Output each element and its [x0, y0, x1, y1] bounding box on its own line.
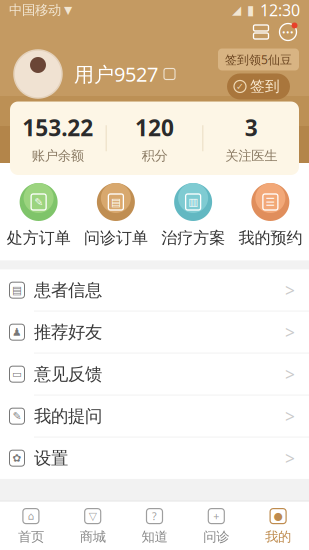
staticText: 我的提问 [34, 405, 102, 427]
button[interactable]: ▤ [0, 270, 309, 312]
staticText: ♟ [12, 326, 22, 338]
button[interactable]: ✎ [0, 183, 77, 248]
staticText: 问诊订单 [84, 228, 148, 248]
staticText: ▭ [12, 368, 22, 380]
staticText: 治疗方案 [161, 228, 225, 248]
button[interactable]: ▭ [0, 354, 309, 396]
staticText: 首页 [18, 529, 44, 545]
staticText: 12:30 [260, 0, 300, 21]
staticText: ▽ [89, 510, 97, 522]
button[interactable]: 编辑昵称 [158, 62, 179, 85]
staticText: 患者信息 [34, 279, 102, 301]
staticText: > [285, 321, 295, 344]
staticText: > [285, 279, 295, 302]
staticText: 推荐好友 [34, 321, 102, 343]
staticText: ✓ [236, 81, 244, 92]
staticText: 我的 [265, 529, 291, 545]
button[interactable]: ▤ [77, 183, 154, 248]
staticText: 设置 [34, 447, 68, 469]
staticText: 知道 [141, 529, 167, 545]
staticText: 用户9527 [74, 61, 158, 87]
staticText: + [213, 509, 219, 523]
staticText: ✎ [34, 196, 43, 208]
staticText: 120 [135, 112, 174, 143]
staticText: 意见反馈 [34, 363, 102, 385]
button[interactable]: ✿ [0, 438, 309, 479]
button[interactable]: ✎ [0, 396, 309, 438]
staticText: > [285, 447, 295, 470]
staticText: 中国移动 [9, 2, 61, 18]
button[interactable]: ▽ [62, 502, 124, 550]
staticText: 签到 [250, 77, 280, 95]
button[interactable]: ● [247, 502, 309, 550]
staticText: 处方订单 [7, 228, 71, 248]
staticText: ✎ [12, 410, 21, 422]
staticText: 关注医生 [225, 148, 277, 164]
staticText: ▤ [111, 196, 121, 208]
button[interactable]: ⌂ [0, 502, 62, 550]
staticText: ▼ [61, 4, 72, 16]
staticText: ••• [282, 26, 294, 38]
button[interactable]: 布局切换 [247, 21, 275, 43]
button[interactable]: ☰ [232, 183, 309, 248]
staticText: 账户余额 [32, 148, 84, 164]
staticText: ⌂ [27, 510, 34, 522]
staticText: ▤ [12, 284, 22, 296]
staticText: > [285, 405, 295, 428]
button[interactable]: ? [124, 502, 185, 550]
staticText: > [285, 363, 295, 386]
button[interactable]: ▥ [154, 183, 232, 248]
staticText: ◢ [232, 3, 241, 17]
staticText: 我的预约 [238, 228, 302, 248]
staticText: ● [274, 510, 283, 522]
staticText: 153.22 [22, 112, 93, 143]
staticText: ▮ [247, 2, 254, 17]
button[interactable]: ♟ [0, 312, 309, 354]
staticText: ✿ [12, 452, 21, 464]
button[interactable]: 消息 [275, 20, 301, 44]
button[interactable]: + [185, 502, 247, 550]
staticText: ☰ [265, 196, 275, 208]
staticText: 3 [245, 112, 258, 143]
button[interactable]: ✓ [227, 73, 290, 99]
staticText: 积分 [141, 148, 167, 164]
staticText: 签到领5仙豆 [225, 51, 292, 67]
staticText: ▥ [188, 196, 198, 208]
staticText: 问诊 [203, 529, 229, 545]
staticText: ? [152, 509, 157, 523]
staticText: 商城 [80, 529, 106, 545]
